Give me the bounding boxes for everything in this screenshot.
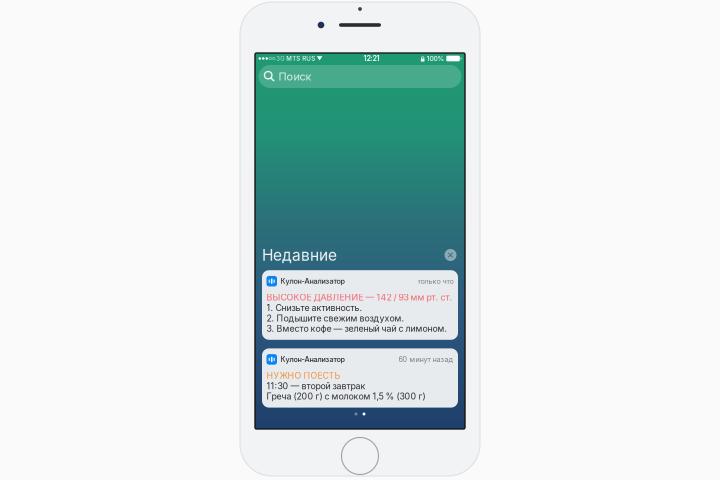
staticText: Поиск	[278, 70, 311, 83]
staticText: 3. Вместо кофе — зеленый чай с лимоном.	[266, 323, 447, 334]
staticText: 3G	[276, 55, 284, 62]
staticText: НУЖНО ПОЕСТЬ	[266, 370, 340, 381]
staticText: ВЫСОКОЕ ДАВЛЕНИЕ — 142 / 93 мм рт. ст.	[266, 292, 452, 303]
staticText: 1. Снизьте активность.	[266, 302, 362, 313]
staticText: Кулон-Анализатор	[280, 277, 344, 285]
staticText: Недавние	[262, 246, 337, 264]
staticText: 11:30 — второй завтрак	[266, 381, 365, 391]
staticText: Кулон-Анализатор	[280, 355, 344, 364]
staticText: 60 минут назад	[398, 355, 453, 364]
staticText: 12:21	[363, 54, 379, 63]
staticText: 2. Подышите свежим воздухом.	[266, 313, 404, 323]
button[interactable]: Очистить	[443, 247, 458, 262]
button[interactable]: Кулон-Анализатор	[262, 348, 458, 408]
button[interactable]: Кулон-Анализатор	[262, 270, 458, 340]
staticText: только что	[417, 277, 453, 285]
staticText: MTS RUS	[286, 55, 315, 62]
staticText: 100%	[426, 54, 444, 63]
staticText: Греча (200 г) с молоком 1,5 % (300 г)	[266, 391, 425, 402]
button[interactable]: Поиск	[258, 65, 461, 88]
